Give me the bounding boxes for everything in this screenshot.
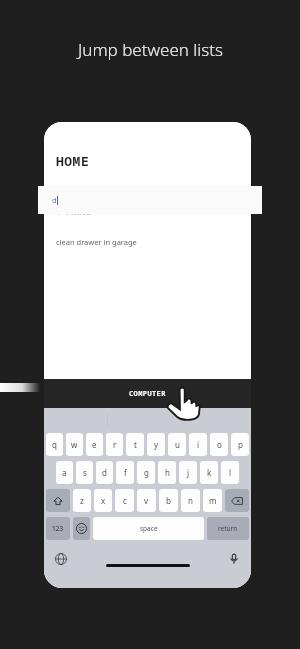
staticText: space (140, 524, 158, 533)
staticText: f (124, 467, 127, 478)
button[interactable]: s (76, 461, 93, 484)
button[interactable]: y (147, 433, 165, 456)
button[interactable]: w (66, 433, 83, 456)
staticText: y (154, 439, 159, 450)
button[interactable]: 123 (46, 517, 70, 540)
staticText: n (188, 495, 193, 506)
staticText: clean drawer in garage (56, 237, 137, 247)
button[interactable]: f (116, 461, 134, 484)
staticText: m (209, 495, 217, 506)
button[interactable]: Shift (46, 489, 70, 512)
button[interactable]: Change keyboard language (54, 552, 68, 566)
button[interactable]: n (181, 489, 200, 512)
staticText: e (92, 439, 97, 450)
button[interactable]: space (93, 517, 204, 540)
button[interactable]: u (168, 433, 186, 456)
button[interactable]: p (231, 433, 249, 456)
button[interactable]: clean drawer in garage (44, 233, 251, 251)
staticText: g (144, 467, 149, 478)
button[interactable]: i (189, 433, 207, 456)
button[interactable]: z (73, 489, 91, 512)
staticText: i (197, 439, 200, 450)
button[interactable]: t (126, 433, 144, 456)
button[interactable]: x (94, 489, 112, 512)
button[interactable]: c (115, 489, 134, 512)
button[interactable]: Filtered (56, 208, 251, 218)
staticText: b (166, 495, 171, 506)
button[interactable]: v (137, 489, 156, 512)
button[interactable]: d (38, 186, 262, 214)
staticText: t (134, 439, 137, 450)
staticText: q (52, 439, 57, 450)
staticText: r (113, 439, 117, 450)
button[interactable]: Voice input (227, 552, 241, 566)
button[interactable]: e (86, 433, 103, 456)
staticText: HOME (56, 152, 90, 170)
staticText: k (207, 467, 212, 478)
button[interactable]: k (200, 461, 218, 484)
button[interactable]: q (46, 433, 63, 456)
staticText: u (175, 439, 180, 450)
button[interactable]: COMPUTER (44, 379, 251, 408)
button[interactable]: o (210, 433, 228, 456)
staticText: Jump between lists (78, 38, 223, 61)
button[interactable]: j (179, 461, 197, 484)
staticText: d (52, 195, 57, 205)
button[interactable]: a (56, 461, 73, 484)
staticText: x (101, 495, 106, 506)
staticText: l (229, 467, 232, 478)
staticText: v (144, 495, 149, 506)
staticText: w (71, 439, 78, 450)
staticText: p (238, 439, 243, 450)
staticText: d (102, 467, 107, 478)
staticText: Filtered (66, 208, 91, 218)
button[interactable]: d (96, 461, 113, 484)
staticText: COMPUTER (129, 389, 166, 399)
staticText: s (83, 467, 87, 478)
button[interactable]: return (207, 517, 249, 540)
button[interactable]: b (159, 489, 178, 512)
staticText: 123 (52, 524, 64, 533)
button[interactable]: Emoji (73, 517, 90, 540)
button[interactable]: h (158, 461, 176, 484)
button[interactable]: l (221, 461, 239, 484)
staticText: j (187, 467, 190, 478)
button[interactable]: Backspace (225, 489, 249, 512)
staticText: o (217, 439, 222, 450)
button[interactable]: m (203, 489, 222, 512)
button[interactable]: g (137, 461, 155, 484)
staticText: a (62, 467, 67, 478)
staticText: z (80, 495, 84, 506)
button[interactable]: r (106, 433, 123, 456)
staticText: return (218, 524, 238, 533)
staticText: c (123, 495, 127, 506)
staticText: h (165, 467, 170, 478)
